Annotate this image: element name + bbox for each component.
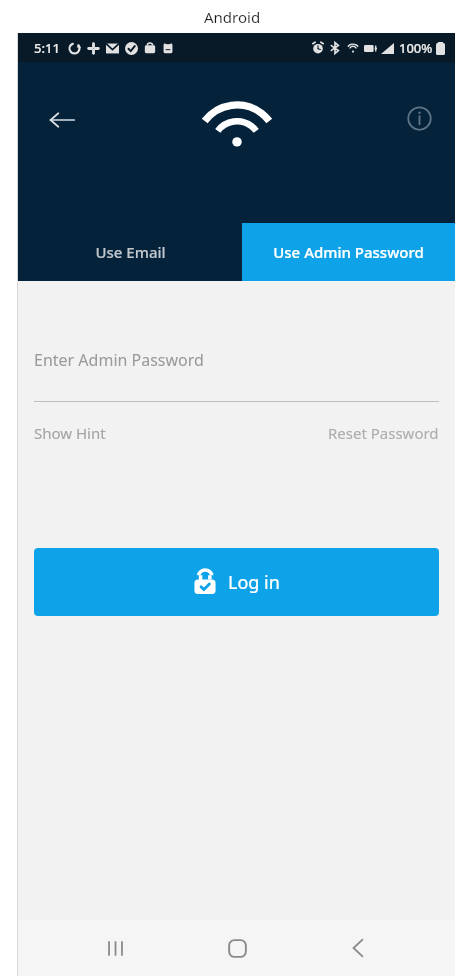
button[interactable]: Back — [40, 98, 84, 142]
staticText: Use Email — [95, 242, 166, 262]
button[interactable]: Back — [334, 924, 382, 972]
button[interactable]: Reset Password — [328, 419, 439, 447]
staticText: Show Hint — [34, 423, 106, 443]
button[interactable]: Show Hint — [34, 419, 106, 447]
button[interactable]: Information — [399, 98, 439, 138]
button[interactable]: Use Admin Password — [242, 223, 455, 281]
staticText: Reset Password — [328, 423, 439, 443]
staticText: Android — [204, 7, 261, 27]
button[interactable]: Home — [213, 924, 261, 972]
staticText: 100% — [399, 39, 433, 57]
button[interactable]: Enter Admin Password — [34, 339, 439, 381]
button[interactable]: Recent apps — [91, 924, 139, 972]
staticText: Log in — [228, 570, 280, 595]
staticText: Enter Admin Password — [34, 349, 204, 371]
button[interactable]: Use Email — [18, 223, 242, 281]
button[interactable]: Log in — [34, 548, 439, 616]
staticText: Use Admin Password — [273, 242, 424, 262]
staticText: 5:11 — [34, 39, 60, 57]
